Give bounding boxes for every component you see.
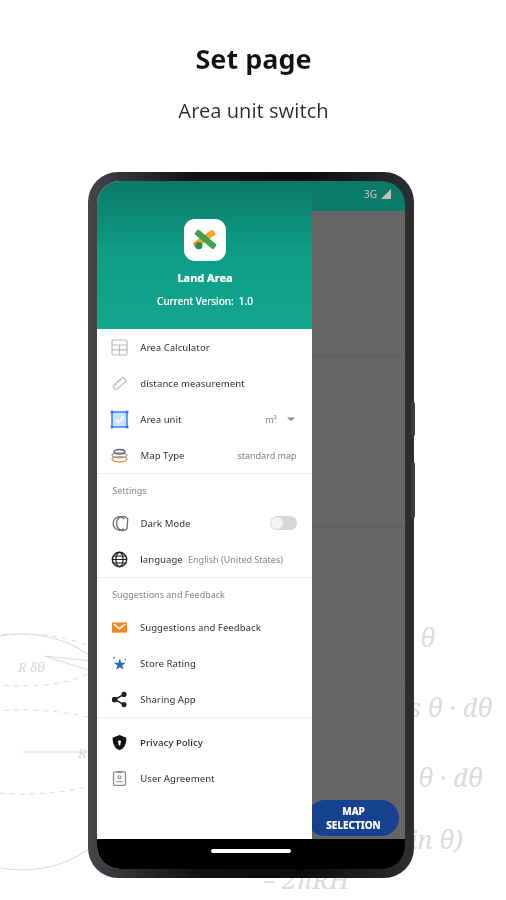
button[interactable]: Map Type — [97, 437, 312, 473]
staticText: Area unit switch — [178, 97, 329, 124]
staticText: R δθ — [18, 658, 45, 676]
staticText: MAP — [342, 804, 365, 818]
staticText: Map Type — [140, 449, 185, 462]
staticText: Dark Mode — [140, 517, 191, 530]
staticText: Privacy Policy — [140, 736, 203, 749]
staticText: R — [78, 744, 87, 762]
staticText: SELECTION — [326, 818, 381, 832]
staticText: standard map — [237, 449, 297, 461]
staticText: os θ · dθ — [395, 690, 493, 724]
staticText: Settings — [112, 484, 147, 496]
staticText: Land Area — [177, 270, 233, 285]
button[interactable]: Sharing App — [97, 681, 312, 717]
staticText: Suggestions and Feedback — [140, 621, 261, 634]
staticText: Area Calculator — [140, 341, 210, 354]
button[interactable]: User Agreement — [97, 760, 312, 796]
button[interactable]: Area unit — [97, 401, 312, 437]
staticText: English (United States) — [188, 553, 283, 565]
staticText: distance measurement — [140, 377, 245, 390]
staticText: User Agreement — [140, 772, 215, 785]
button[interactable]: Suggestions and Feedback — [97, 609, 312, 645]
staticText: Area unit — [140, 413, 182, 426]
button[interactable]: Area Calculator — [97, 329, 312, 365]
button[interactable]: MAP — [307, 800, 399, 836]
staticText: = 2πRH — [262, 862, 350, 896]
button[interactable]: Privacy Policy — [97, 724, 312, 760]
staticText: Sharing App — [140, 693, 196, 706]
staticText: Set page — [195, 40, 312, 77]
button[interactable]: language — [97, 541, 312, 577]
button[interactable]: Dark Mode toggle — [270, 516, 297, 530]
staticText: language — [140, 553, 183, 566]
staticText: s θ · dθ — [400, 760, 483, 794]
staticText: in θ) — [410, 822, 463, 856]
button[interactable]: distance measurement — [97, 365, 312, 401]
button[interactable]: Store Rating — [97, 645, 312, 681]
staticText: θ — [420, 620, 436, 654]
staticText: Store Rating — [140, 657, 196, 670]
button[interactable]: Dark Mode — [97, 505, 312, 541]
staticText: Suggestions and Feedback — [112, 588, 225, 600]
staticText: m² — [265, 413, 277, 425]
staticText: Current Version: 1.0 — [157, 294, 253, 308]
staticText: 3G — [364, 187, 377, 201]
